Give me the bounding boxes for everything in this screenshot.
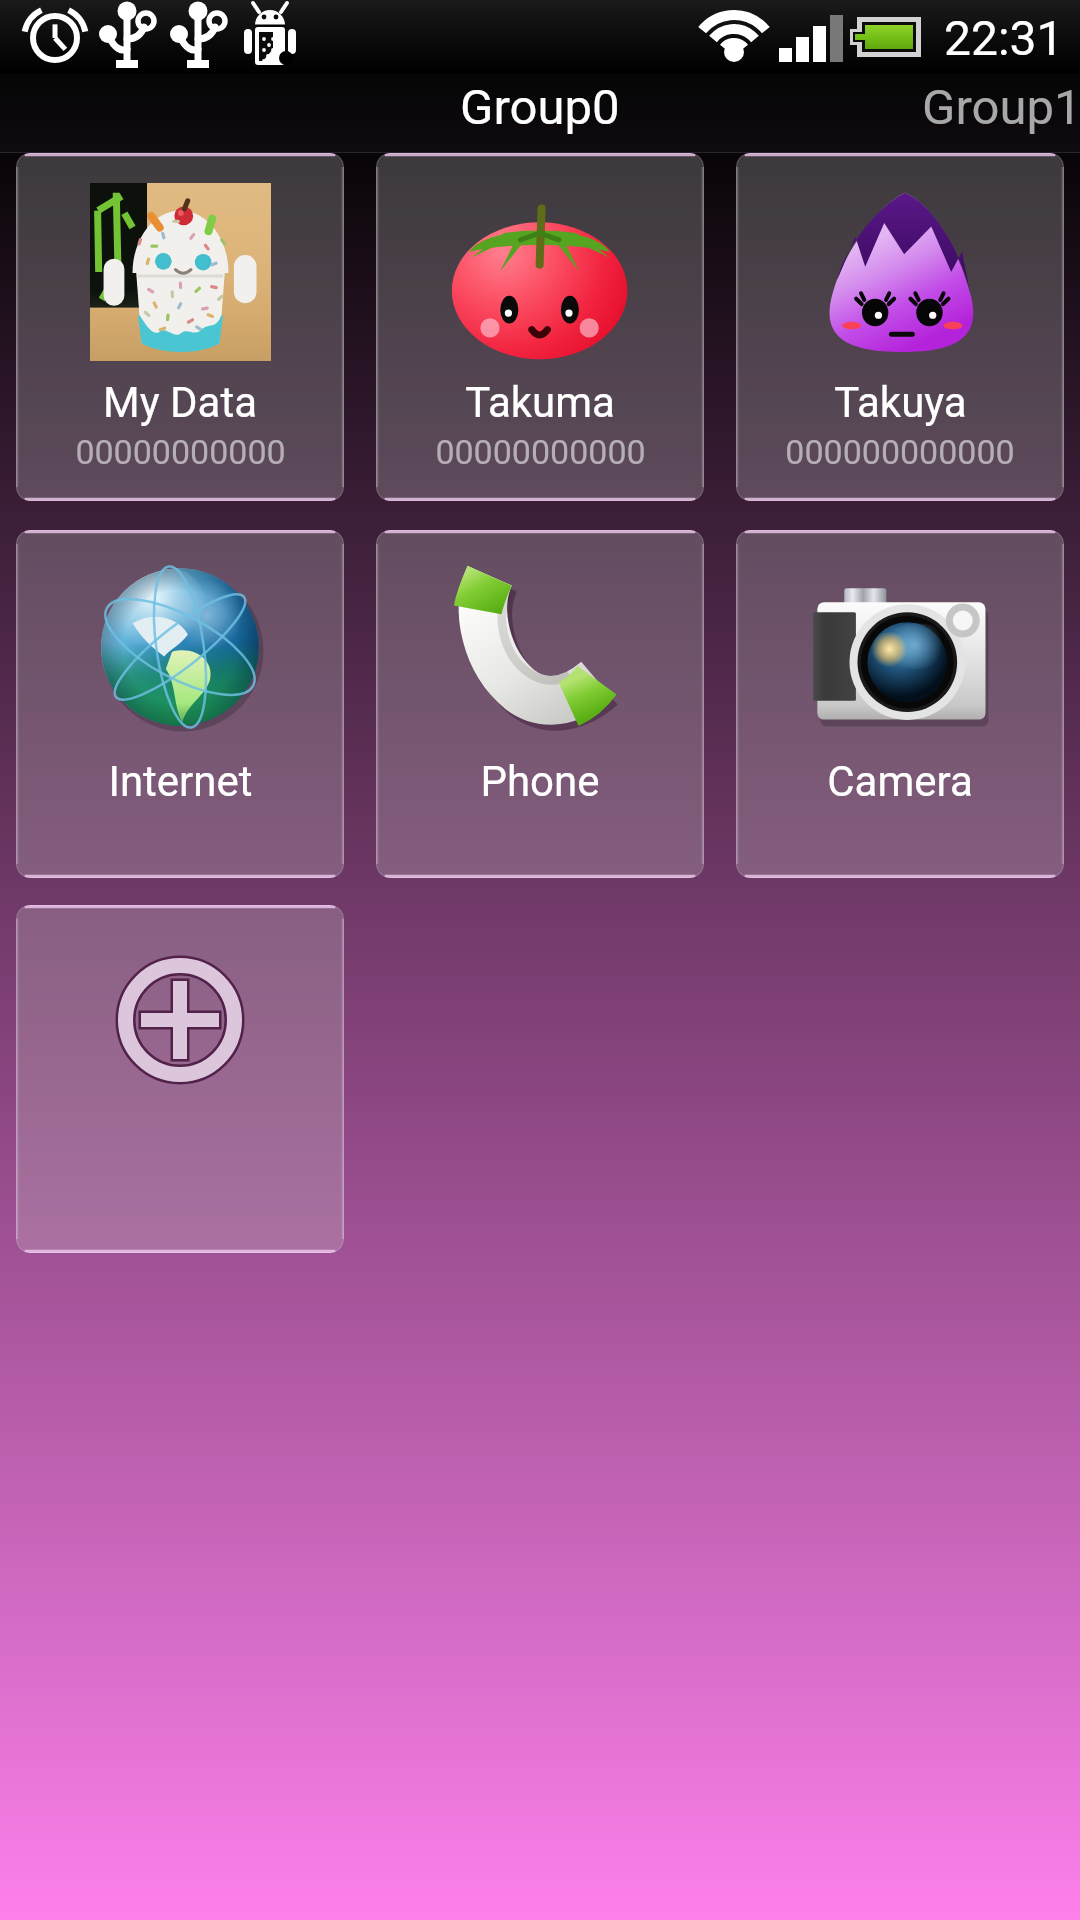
button[interactable]: Internet [16, 530, 344, 878]
staticText: 00000000000 [75, 432, 286, 472]
button[interactable]: Takuma [376, 153, 704, 501]
staticText: Phone [480, 757, 600, 806]
button[interactable]: Camera [736, 530, 1064, 878]
button[interactable]: Add [16, 905, 344, 1253]
staticText: 22:31 [944, 10, 1064, 66]
button[interactable]: Phone [376, 530, 704, 878]
staticText: 00000000000 [435, 432, 646, 472]
button[interactable]: Takuya [736, 153, 1064, 501]
staticText: Takuma [465, 378, 615, 427]
button[interactable]: Group1 [902, 79, 1080, 136]
staticText: 000000000000 [785, 432, 1015, 472]
staticText: Internet [108, 757, 253, 806]
staticText: Takuya [834, 378, 967, 427]
staticText: My Data [103, 378, 257, 427]
staticText: Camera [827, 757, 973, 806]
button[interactable]: My Data [16, 153, 344, 501]
button[interactable]: Group0 [440, 79, 640, 136]
